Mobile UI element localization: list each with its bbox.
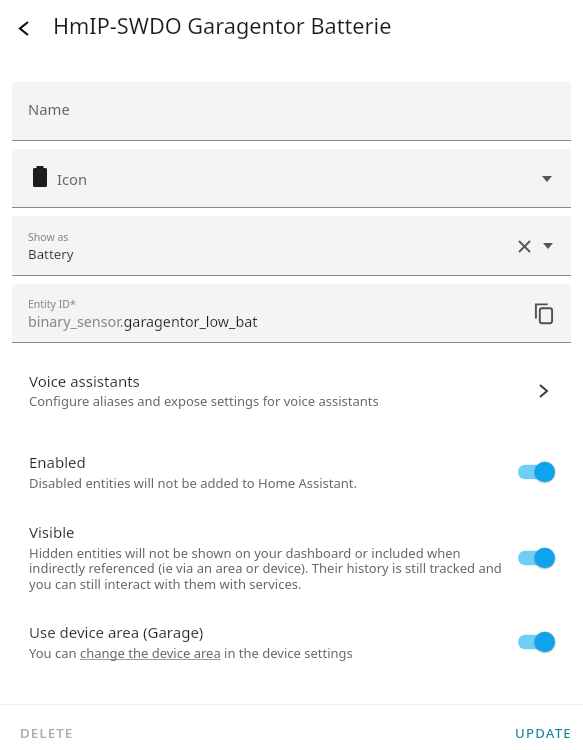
button[interactable]: Toggle — [518, 545, 556, 571]
staticText: Visible — [29, 522, 75, 542]
button[interactable]: Voice assistants — [0, 361, 583, 420]
button[interactable]: Icon — [12, 149, 571, 207]
staticText: Show as — [28, 230, 69, 244]
button[interactable]: Copy entity ID — [530, 299, 558, 327]
staticText: Name — [28, 99, 70, 119]
button[interactable]: Name — [12, 82, 571, 140]
button[interactable]: Entity ID* — [12, 284, 571, 342]
button[interactable]: UPDATE — [506, 713, 581, 743]
staticText: DELETE — [20, 724, 74, 742]
staticText: Configure aliases and expose settings fo… — [29, 392, 379, 410]
staticText: Enabled — [29, 452, 86, 472]
button[interactable]: Use device area (Garage) — [0, 622, 583, 662]
other: Open voice assistants — [529, 377, 557, 405]
staticText: Entity ID* — [28, 297, 76, 311]
button[interactable]: Enabled — [0, 452, 583, 492]
button[interactable]: Toggle — [518, 459, 556, 485]
button[interactable]: DELETE — [11, 713, 83, 743]
button[interactable]: Show as — [12, 216, 571, 275]
staticText: Disabled entities will not be added to H… — [29, 474, 357, 492]
button[interactable]: Toggle — [518, 629, 556, 655]
staticText: Battery — [28, 245, 74, 263]
staticText: Use device area (Garage) — [29, 622, 204, 642]
staticText: Icon — [57, 169, 88, 189]
button[interactable]: Back — [0, 4, 48, 52]
button[interactable]: Clear — [512, 234, 536, 258]
staticText: Hidden entities will not be shown on you… — [29, 544, 506, 593]
staticText: UPDATE — [515, 724, 572, 742]
staticText: binary_sensor.garagentor_low_bat — [28, 312, 258, 331]
staticText: You can change the device area in the de… — [29, 644, 353, 662]
staticText: HmIP-SWDO Garagentor Batterie — [53, 11, 392, 41]
button[interactable]: Visible — [0, 522, 583, 593]
staticText: Voice assistants — [29, 371, 140, 391]
